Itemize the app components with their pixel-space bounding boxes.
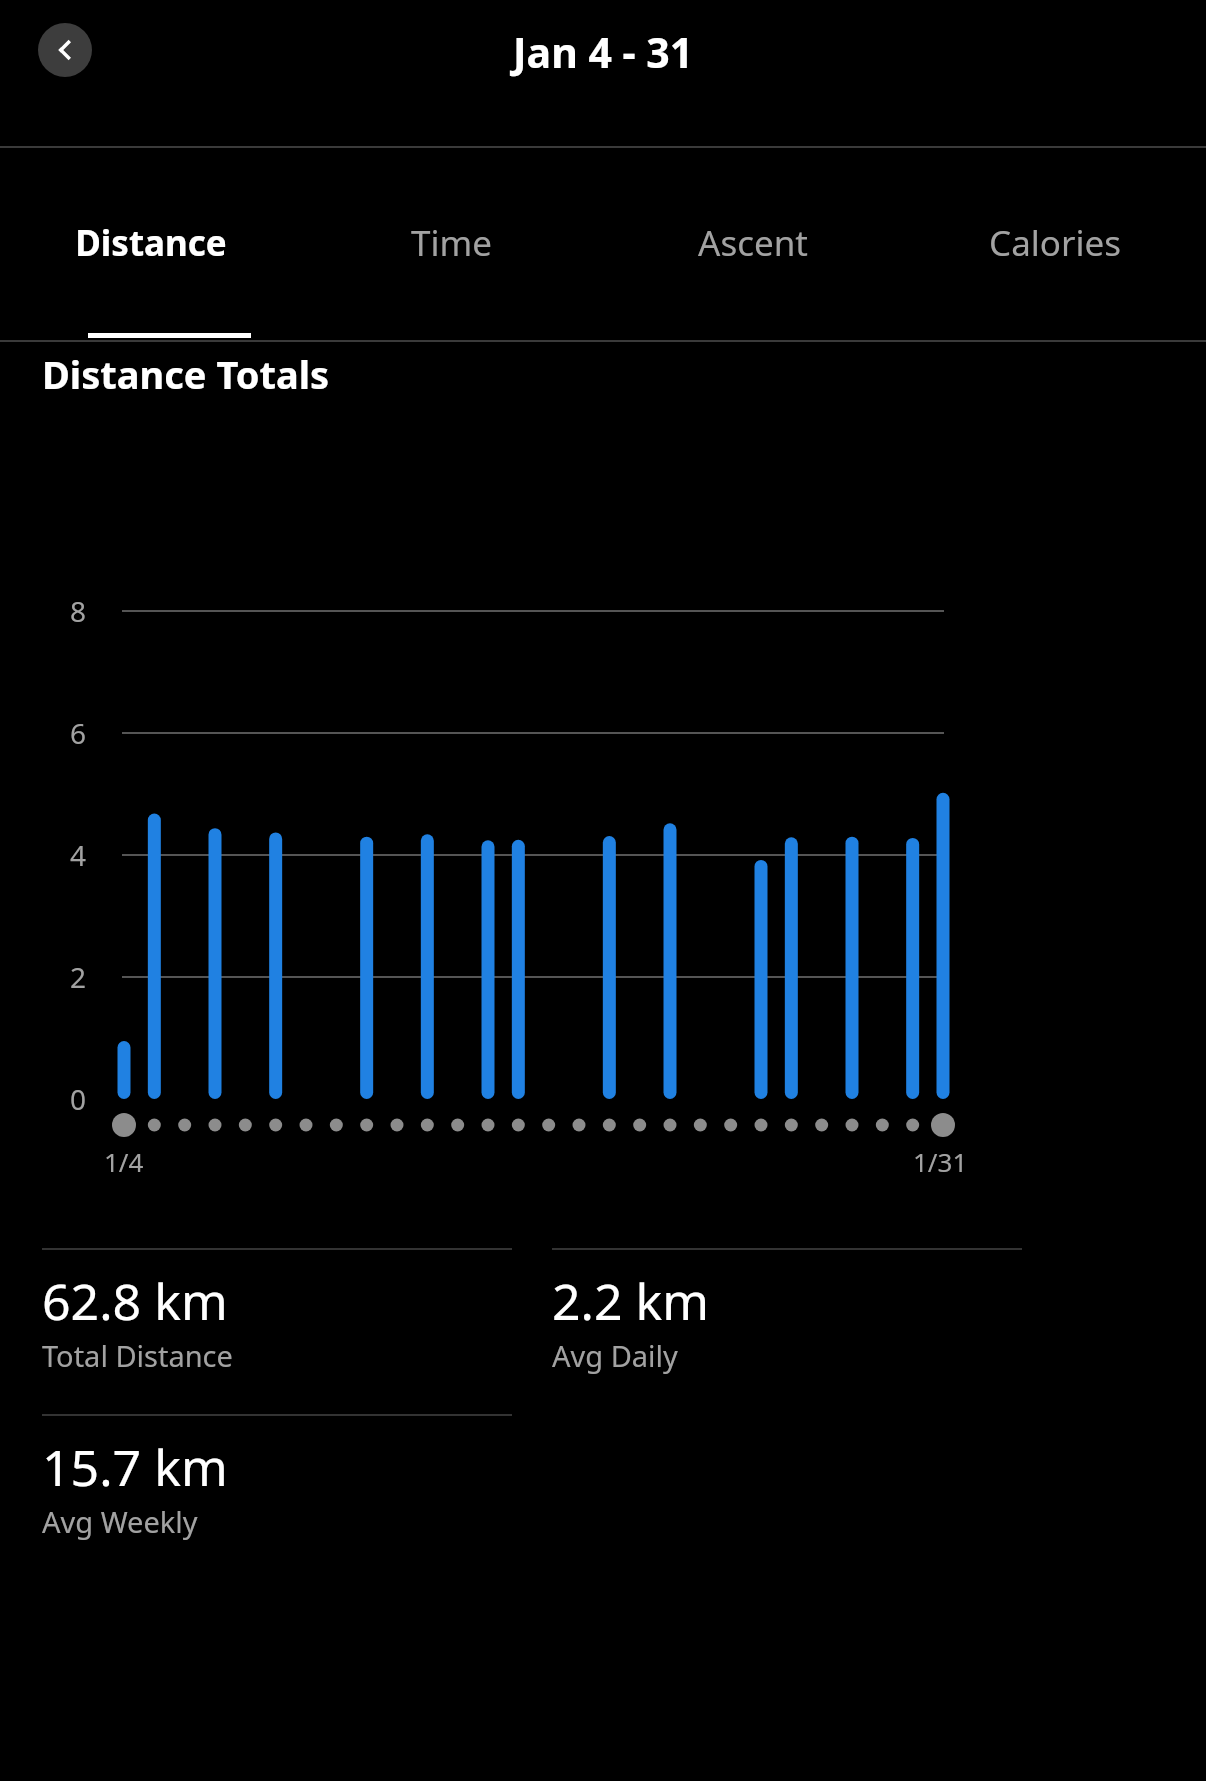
staticText: Time bbox=[411, 219, 492, 267]
staticText: Avg Daily bbox=[552, 1336, 678, 1375]
button[interactable]: Distance bbox=[0, 148, 301, 338]
staticText: 4 bbox=[70, 836, 87, 874]
staticText: 8 bbox=[70, 592, 87, 630]
staticText: 0 bbox=[70, 1080, 87, 1118]
staticText: 6 bbox=[70, 714, 87, 752]
button[interactable]: Ascent bbox=[602, 148, 904, 338]
staticText: Avg Weekly bbox=[42, 1502, 198, 1541]
staticText: Total Distance bbox=[42, 1336, 233, 1375]
staticText: Distance bbox=[75, 219, 227, 267]
staticText: 2.2 km bbox=[552, 1267, 710, 1335]
staticText: 1/31 bbox=[913, 1144, 968, 1179]
staticText: 15.7 km bbox=[42, 1433, 228, 1501]
staticText: 1/4 bbox=[104, 1144, 144, 1179]
staticText: Jan 4 - 31 bbox=[513, 24, 694, 80]
button[interactable]: 15.7 km bbox=[42, 1414, 512, 1541]
button[interactable]: Back bbox=[38, 23, 92, 77]
staticText: Ascent bbox=[698, 219, 808, 267]
button[interactable]: 2.2 km bbox=[552, 1248, 1022, 1375]
staticText: Calories bbox=[989, 219, 1121, 267]
button[interactable]: Calories bbox=[904, 148, 1206, 338]
button[interactable]: 62.8 km bbox=[42, 1248, 512, 1375]
staticText: 2 bbox=[70, 958, 87, 996]
staticText: 62.8 km bbox=[42, 1267, 228, 1335]
staticText: Distance Totals bbox=[42, 348, 330, 400]
button[interactable]: Time bbox=[301, 148, 602, 338]
